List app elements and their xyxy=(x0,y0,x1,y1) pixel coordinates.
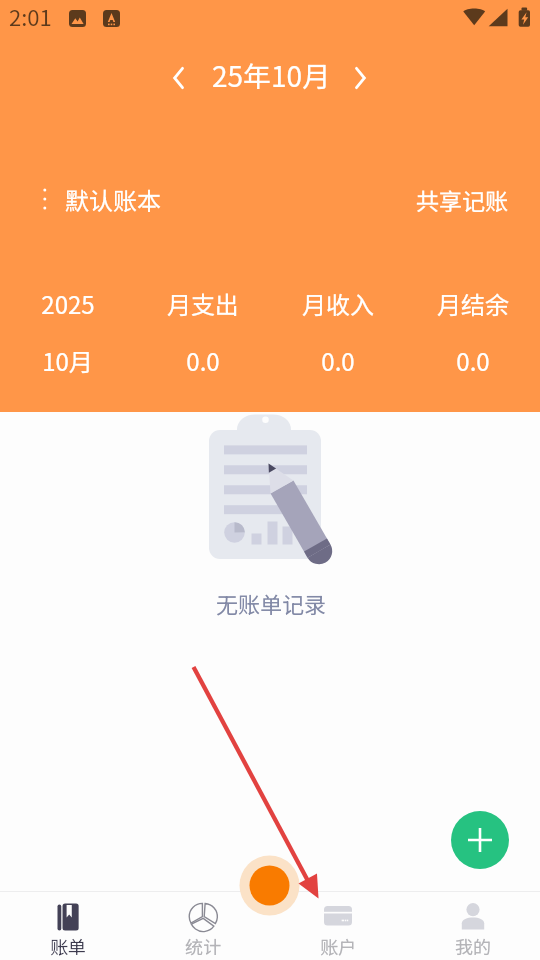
button[interactable]: 默认账本 xyxy=(34,178,161,220)
button[interactable]: Add record xyxy=(451,811,509,869)
staticText: 月收入 xyxy=(302,286,374,321)
staticText: 无账单记录 xyxy=(216,587,327,619)
button[interactable]: 共享记账 xyxy=(416,178,508,220)
button[interactable]: 账单 xyxy=(0,891,135,960)
staticText: 默认账本 xyxy=(65,182,161,217)
button[interactable]: Previous month xyxy=(159,58,199,98)
staticText: 共享记账 xyxy=(416,183,508,216)
staticText: 2:01 xyxy=(9,0,52,32)
staticText: 账单 xyxy=(50,933,86,959)
staticText: 25年10月 xyxy=(212,55,331,96)
button[interactable]: 账户 xyxy=(270,891,405,960)
button[interactable]: 统计 xyxy=(135,891,270,960)
staticText: 0.0 xyxy=(186,343,220,378)
staticText: 账户 xyxy=(320,933,356,959)
staticText: 统计 xyxy=(185,933,221,959)
staticText: 0.0 xyxy=(321,343,355,378)
staticText: 0.0 xyxy=(456,343,490,378)
staticText: 月结余 xyxy=(437,286,509,321)
staticText: 我的 xyxy=(455,933,491,959)
staticText: 2025 xyxy=(41,286,95,321)
staticText: 月支出 xyxy=(167,286,239,321)
staticText: 10月 xyxy=(42,343,93,378)
button[interactable]: Next month xyxy=(340,58,380,98)
button[interactable]: 我的 xyxy=(405,891,540,960)
